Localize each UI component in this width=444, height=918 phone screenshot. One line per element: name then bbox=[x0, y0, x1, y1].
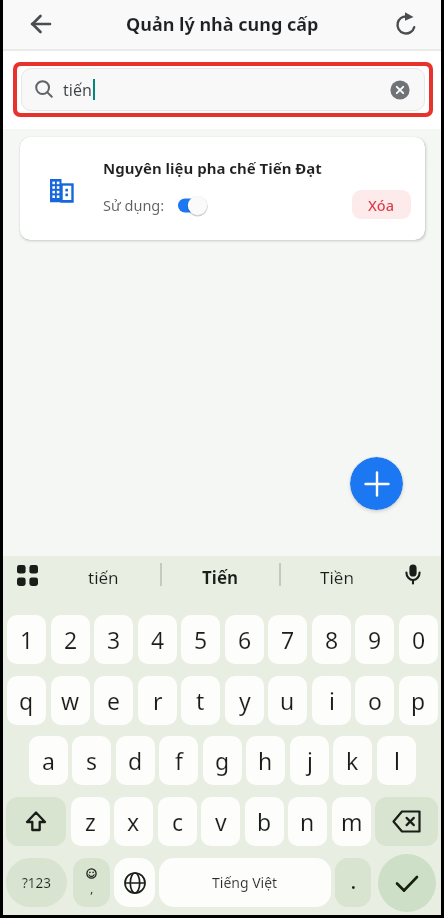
staticText: f bbox=[175, 745, 183, 776]
button[interactable]: l bbox=[377, 736, 416, 785]
button[interactable] bbox=[375, 797, 438, 846]
button[interactable]: ?123 bbox=[6, 858, 67, 907]
button[interactable]: m bbox=[332, 797, 371, 846]
staticText: Quản lý nhà cung cấp bbox=[126, 12, 319, 37]
button[interactable]: p bbox=[399, 676, 438, 725]
button[interactable] bbox=[172, 189, 234, 222]
button[interactable]: 9 bbox=[355, 615, 394, 664]
button[interactable]: g bbox=[203, 736, 242, 785]
staticText: x bbox=[127, 806, 140, 837]
staticText: ?123 bbox=[22, 874, 52, 892]
staticText: i bbox=[329, 685, 335, 716]
staticText: , bbox=[90, 879, 94, 897]
staticText: tiến bbox=[88, 566, 119, 589]
button[interactable]: Tiến bbox=[163, 556, 277, 598]
staticText: 2 bbox=[64, 624, 78, 655]
button[interactable] bbox=[350, 457, 403, 510]
button[interactable]: t bbox=[181, 676, 220, 725]
staticText: t bbox=[196, 685, 205, 716]
staticText: m bbox=[341, 806, 363, 837]
button[interactable]: v bbox=[201, 797, 240, 846]
button[interactable]: q bbox=[7, 676, 46, 725]
staticText: n bbox=[300, 806, 315, 837]
button[interactable] bbox=[398, 559, 428, 589]
button[interactable]: Tiếng Việt bbox=[159, 858, 331, 907]
button[interactable]: e bbox=[94, 676, 133, 725]
staticText: a bbox=[42, 745, 55, 776]
staticText: Tiền bbox=[320, 566, 354, 589]
button[interactable]: z bbox=[71, 797, 110, 846]
button[interactable]: n bbox=[288, 797, 327, 846]
staticText: r bbox=[153, 685, 163, 716]
button[interactable] bbox=[6, 797, 66, 846]
button[interactable]: Xóa bbox=[352, 190, 411, 219]
button[interactable]: 7 bbox=[268, 615, 307, 664]
button[interactable]: r bbox=[138, 676, 177, 725]
staticText: c bbox=[172, 806, 184, 837]
button[interactable]: . bbox=[335, 858, 371, 907]
button[interactable] bbox=[392, 10, 420, 38]
button[interactable]: k bbox=[333, 736, 372, 785]
button[interactable] bbox=[378, 854, 436, 912]
staticText: 1 bbox=[20, 624, 34, 655]
staticText: e bbox=[107, 685, 120, 716]
button[interactable]: 6 bbox=[225, 615, 264, 664]
button[interactable]: tiến bbox=[48, 556, 158, 598]
staticText: w bbox=[61, 685, 80, 716]
button[interactable]: o bbox=[355, 676, 394, 725]
staticText: 0 bbox=[412, 624, 426, 655]
staticText: Tiến bbox=[202, 566, 239, 589]
button[interactable] bbox=[114, 858, 155, 907]
button[interactable]: w bbox=[51, 676, 90, 725]
staticText: d bbox=[128, 745, 143, 776]
button[interactable]: , bbox=[73, 858, 110, 907]
staticText: Tiếng Việt bbox=[212, 873, 278, 892]
button[interactable]: i bbox=[312, 676, 351, 725]
button[interactable]: 0 bbox=[399, 615, 438, 664]
staticText: 8 bbox=[325, 624, 339, 655]
button[interactable]: 5 bbox=[181, 615, 220, 664]
button[interactable]: Nguyên liệu pha chế Tiến Đạt bbox=[20, 137, 425, 240]
button[interactable]: a bbox=[29, 736, 68, 785]
staticText: g bbox=[215, 745, 230, 776]
staticText: q bbox=[19, 685, 34, 716]
staticText: u bbox=[280, 685, 295, 716]
button[interactable]: f bbox=[159, 736, 198, 785]
button[interactable]: u bbox=[268, 676, 307, 725]
button[interactable]: 3 bbox=[94, 615, 133, 664]
staticText: 7 bbox=[281, 624, 295, 655]
staticText: 3 bbox=[107, 624, 121, 655]
button[interactable]: 1 bbox=[7, 615, 46, 664]
button[interactable] bbox=[27, 10, 55, 38]
staticText: v bbox=[215, 806, 227, 837]
staticText: k bbox=[346, 745, 359, 776]
button[interactable]: x bbox=[114, 797, 153, 846]
staticText: h bbox=[258, 745, 273, 776]
button[interactable]: j bbox=[290, 736, 329, 785]
staticText: l bbox=[394, 745, 400, 776]
button[interactable]: h bbox=[246, 736, 285, 785]
button[interactable]: c bbox=[158, 797, 197, 846]
staticText: y bbox=[239, 685, 251, 716]
staticText: j bbox=[307, 745, 313, 776]
button[interactable]: tiến bbox=[13, 62, 433, 117]
button[interactable]: y bbox=[225, 676, 264, 725]
button[interactable]: 2 bbox=[51, 615, 90, 664]
button[interactable]: d bbox=[116, 736, 155, 785]
button[interactable]: s bbox=[72, 736, 111, 785]
button[interactable] bbox=[12, 560, 42, 590]
staticText: o bbox=[368, 685, 382, 716]
button[interactable] bbox=[387, 77, 413, 103]
button[interactable]: 4 bbox=[138, 615, 177, 664]
button[interactable]: b bbox=[245, 797, 284, 846]
button[interactable]: 8 bbox=[312, 615, 351, 664]
button[interactable]: Tiền bbox=[281, 556, 393, 598]
staticText: b bbox=[257, 806, 272, 837]
staticText: Xóa bbox=[368, 195, 395, 215]
staticText: 4 bbox=[151, 624, 165, 655]
staticText: 6 bbox=[238, 624, 252, 655]
staticText: tiến bbox=[63, 79, 92, 101]
staticText: Nguyên liệu pha chế Tiến Đạt bbox=[103, 158, 322, 178]
staticText: 9 bbox=[368, 624, 382, 655]
staticText: s bbox=[86, 745, 98, 776]
